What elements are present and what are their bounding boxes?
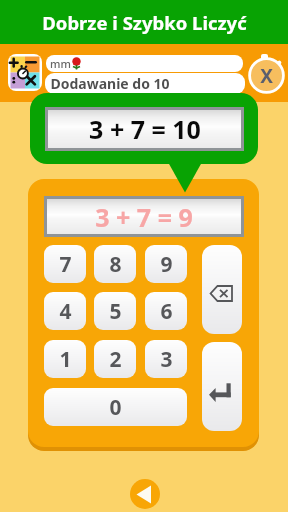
- button[interactable]: [8, 54, 42, 91]
- button[interactable]: 8: [94, 245, 136, 283]
- button[interactable]: 2: [94, 340, 136, 378]
- button[interactable]: 5: [94, 292, 136, 330]
- button[interactable]: [202, 342, 242, 431]
- staticText: 5: [109, 297, 122, 326]
- staticText: 9: [160, 250, 173, 279]
- staticText: 4: [59, 297, 72, 326]
- button[interactable]: 6: [145, 292, 187, 330]
- staticText: 6: [160, 297, 173, 326]
- staticText: 8: [109, 250, 122, 279]
- staticText: Dobrze i Szybko Liczyć: [42, 10, 247, 35]
- button[interactable]: [202, 245, 242, 334]
- button[interactable]: [130, 479, 160, 509]
- button[interactable]: 9: [145, 245, 187, 283]
- staticText: 7: [59, 250, 72, 279]
- staticText: 2: [109, 345, 122, 374]
- button[interactable]: 7: [44, 245, 86, 283]
- button[interactable]: mm: [46, 55, 243, 72]
- staticText: mm: [50, 56, 71, 71]
- button[interactable]: 4: [44, 292, 86, 330]
- button[interactable]: 3: [145, 340, 187, 378]
- staticText: 3 + 7 = 9: [95, 200, 193, 234]
- button[interactable]: X: [247, 53, 286, 94]
- staticText: 3: [160, 345, 173, 374]
- button[interactable]: Dodawanie do 10: [45, 73, 245, 94]
- staticText: Dodawanie do 10: [50, 74, 170, 93]
- staticText: 1: [59, 345, 72, 374]
- staticText: 3 + 7 = 10: [89, 112, 201, 146]
- button[interactable]: 0: [44, 388, 187, 426]
- staticText: 0: [109, 393, 122, 422]
- button[interactable]: 1: [44, 340, 86, 378]
- staticText: X: [260, 63, 273, 89]
